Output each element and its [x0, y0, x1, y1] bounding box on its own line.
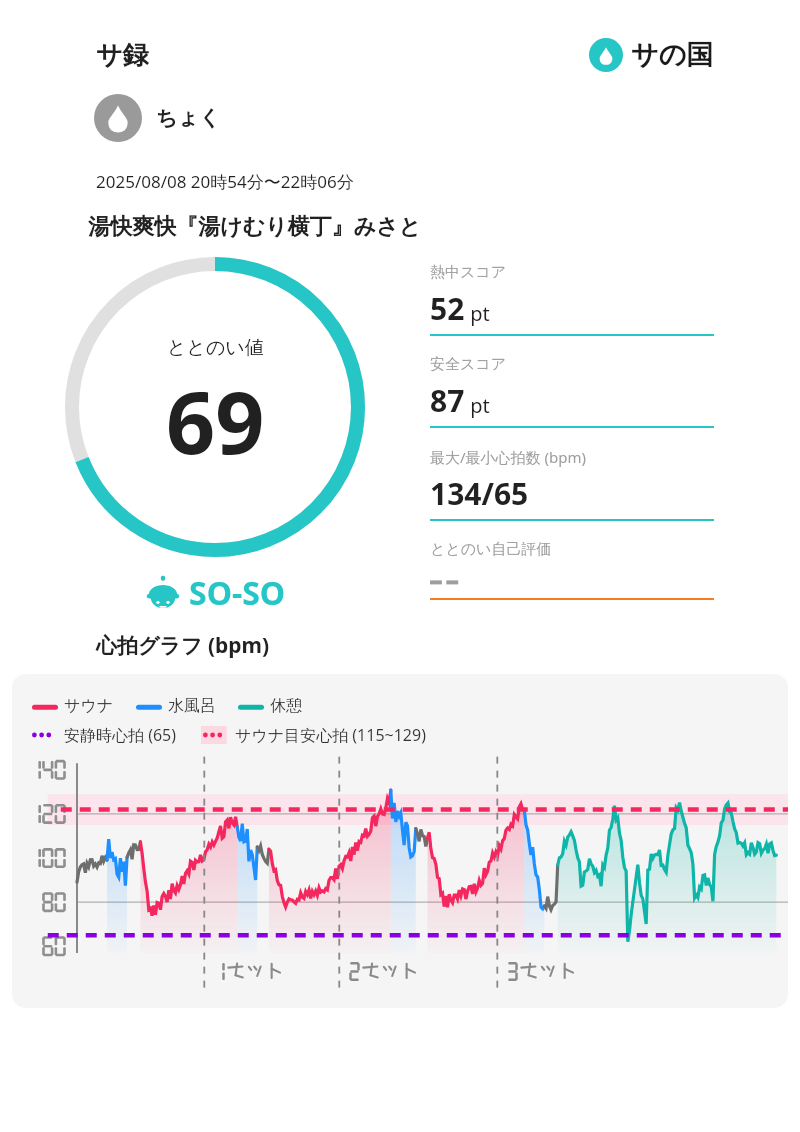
button[interactable]: 熱中スコア	[430, 263, 714, 355]
button[interactable]: 安全スコア	[430, 355, 714, 447]
staticText: 最大/最小心拍数 (bpm)	[430, 447, 586, 467]
staticText: 心拍グラフ (bpm)	[96, 631, 270, 660]
staticText: サの国	[631, 38, 714, 72]
staticText: 安全スコア	[430, 355, 507, 374]
staticText: 休憩	[270, 696, 302, 716]
staticText: 安静時心拍 (65)	[64, 724, 177, 746]
button[interactable]: 最大/最小心拍数 (bpm)	[430, 447, 714, 540]
staticText: pt	[465, 392, 490, 419]
staticText: 熱中スコア	[430, 263, 507, 282]
staticText: 52	[430, 288, 465, 329]
staticText: 69	[166, 362, 265, 479]
staticText: SO-SO	[189, 571, 286, 615]
button[interactable]: ととのい自己評価	[430, 540, 714, 619]
staticText: 湯快爽快『湯けむり横丁』みさと	[88, 213, 422, 241]
staticText: 134/65	[430, 473, 529, 514]
staticText: 87	[430, 380, 465, 421]
button[interactable]: ちょく	[94, 94, 221, 142]
button[interactable]: サウナイキタイ サの国	[589, 38, 714, 72]
staticText: 水風呂	[168, 696, 216, 716]
staticText: pt	[465, 300, 490, 327]
staticText: ととのい自己評価	[430, 540, 552, 559]
staticText: サ録	[96, 39, 149, 72]
staticText: サウナ目安心拍 (115~129)	[235, 724, 426, 746]
staticText: サウナ	[64, 696, 114, 716]
staticText: ととのい値	[167, 336, 264, 360]
staticText: ちょく	[156, 105, 221, 131]
staticText: 2025/08/08 20時54分〜22時06分	[96, 170, 354, 193]
